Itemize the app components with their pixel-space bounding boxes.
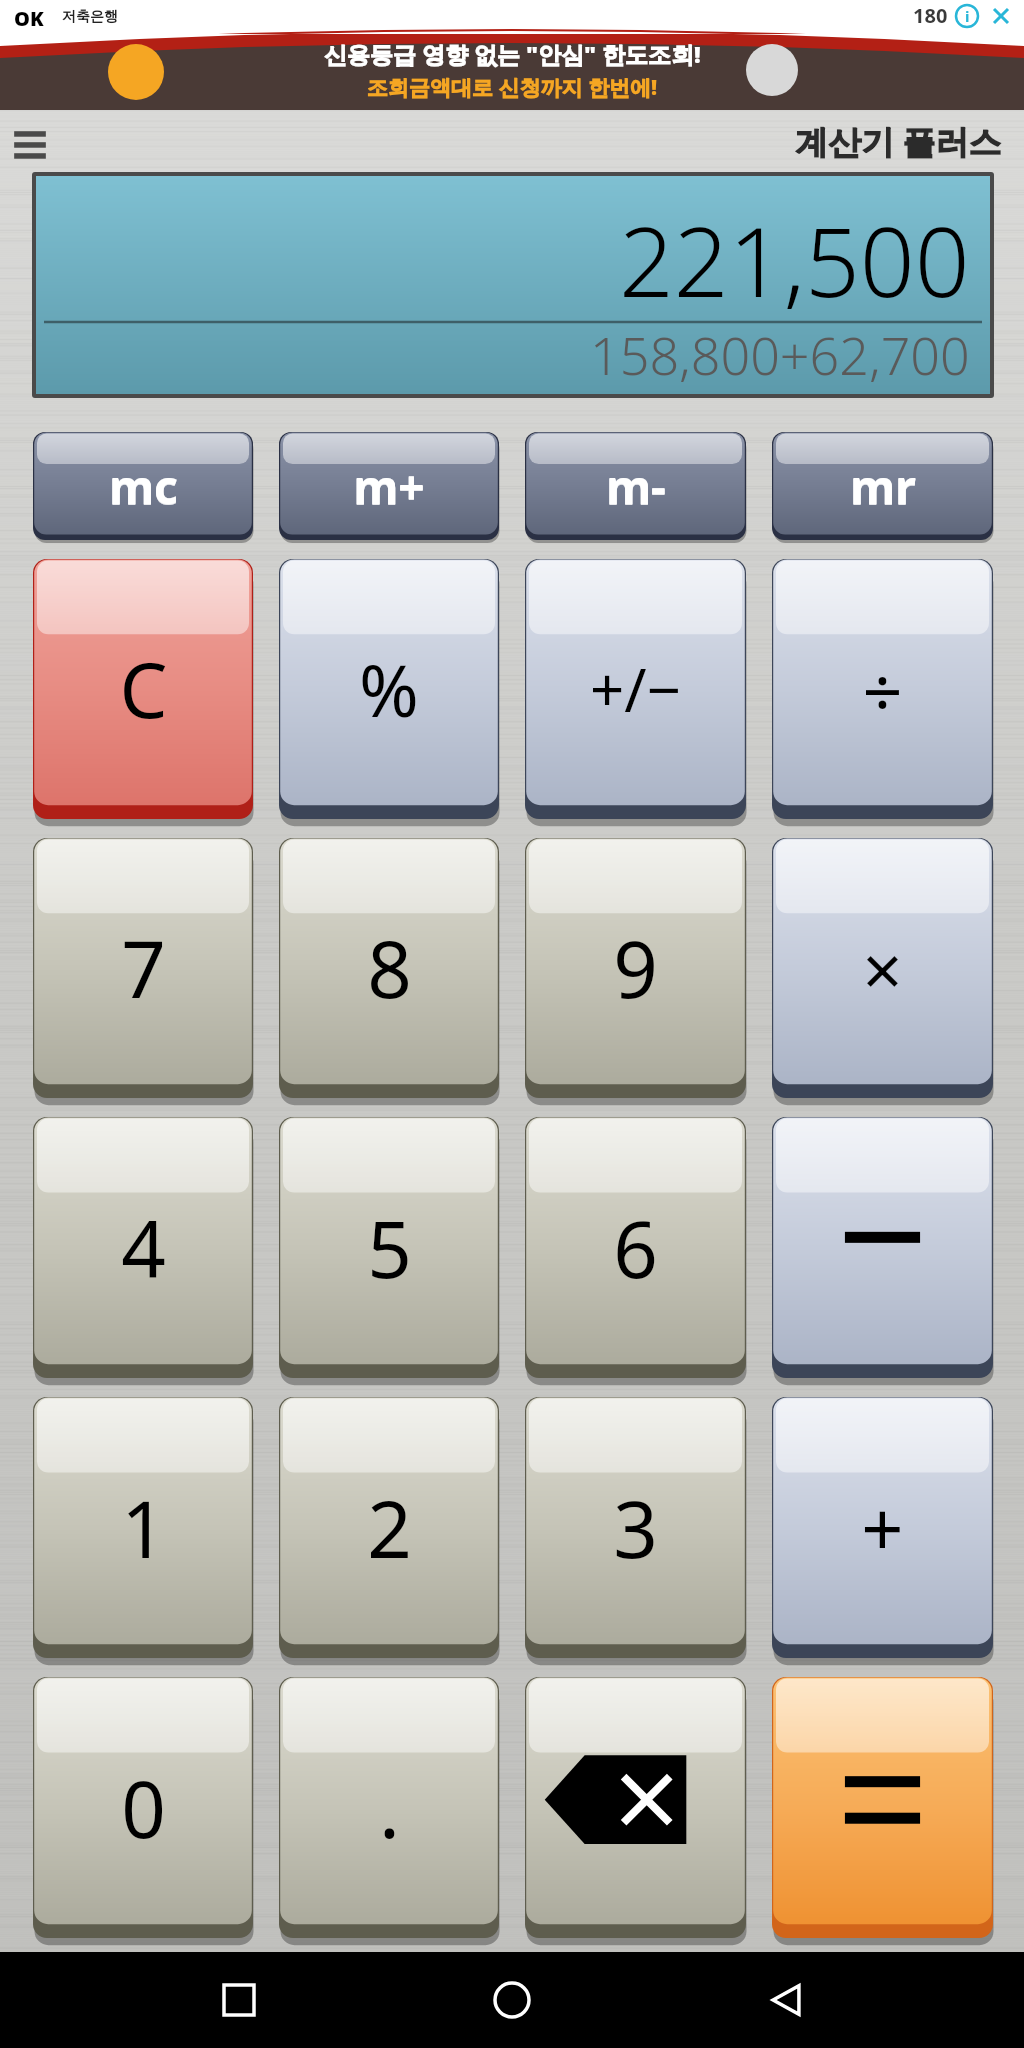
staticText: m+ xyxy=(353,456,425,519)
staticText: 7 xyxy=(121,915,166,1021)
staticText: 221,500 xyxy=(619,194,970,325)
button[interactable]: 1 xyxy=(33,1397,253,1658)
button[interactable]: Back xyxy=(751,1965,821,2035)
staticText: mr xyxy=(850,456,916,519)
staticText: 5 xyxy=(367,1195,412,1301)
button[interactable]: 4 xyxy=(33,1117,253,1378)
button[interactable]: . xyxy=(279,1677,499,1938)
button[interactable]: 7 xyxy=(33,838,253,1098)
staticText: m- xyxy=(606,456,666,519)
button[interactable]: 2 xyxy=(279,1397,499,1658)
staticText: 158,800+62,700 xyxy=(590,319,970,390)
button[interactable]: Menu xyxy=(8,119,52,163)
staticText: 180 xyxy=(913,2,948,29)
staticText: mc xyxy=(109,456,178,519)
staticText: 6 xyxy=(613,1195,658,1301)
staticText: + xyxy=(861,1477,904,1578)
button[interactable]: +/− xyxy=(525,559,746,819)
staticText: 신용등급 영향 없는 "안심" 한도조회! xyxy=(324,38,701,69)
staticText: C xyxy=(119,637,168,741)
button[interactable]: % xyxy=(279,559,499,819)
button[interactable]: 5 xyxy=(279,1117,499,1378)
button[interactable]: C xyxy=(33,559,253,819)
staticText: 8 xyxy=(367,915,412,1021)
staticText: 2 xyxy=(367,1475,412,1581)
button[interactable]: Home xyxy=(477,1965,547,2035)
button[interactable]: Info xyxy=(954,3,980,29)
button[interactable]: Close xyxy=(988,3,1014,29)
staticText: m- xyxy=(606,455,666,518)
button[interactable]: 9 xyxy=(525,838,746,1098)
staticText: m+ xyxy=(353,455,425,518)
staticText: ÷ xyxy=(862,642,903,737)
button[interactable]: m+ xyxy=(279,432,499,540)
staticText: mr xyxy=(850,455,916,518)
button[interactable]: + xyxy=(772,1397,993,1658)
staticText: 계산기 플러스 xyxy=(795,119,1002,164)
button[interactable]: 3 xyxy=(525,1397,746,1658)
staticText: i xyxy=(965,6,970,26)
staticText: × xyxy=(862,921,903,1016)
button[interactable]: m- xyxy=(525,432,746,540)
staticText: +/− xyxy=(590,648,681,730)
staticText: 1 xyxy=(121,1475,166,1581)
button[interactable]: Equals xyxy=(772,1677,993,1938)
button[interactable]: mc xyxy=(33,432,253,540)
staticText: . xyxy=(379,1755,400,1861)
staticText: OK xyxy=(14,5,44,32)
button[interactable]: ÷ xyxy=(772,559,993,819)
button[interactable]: 0 xyxy=(33,1677,253,1938)
staticText: 9 xyxy=(613,915,658,1021)
button[interactable]: 8 xyxy=(279,838,499,1098)
staticText: 3 xyxy=(613,1475,658,1581)
button[interactable]: × xyxy=(772,838,993,1098)
staticText: mc xyxy=(109,455,178,518)
button[interactable]: Minus xyxy=(772,1117,993,1378)
staticText: % xyxy=(359,640,419,738)
button[interactable]: Recents xyxy=(204,1965,274,2035)
button[interactable]: 6 xyxy=(525,1117,746,1378)
staticText: 조회금액대로 신청까지 한번에! xyxy=(367,73,658,102)
staticText: 4 xyxy=(121,1195,166,1301)
button[interactable]: Backspace xyxy=(525,1677,746,1938)
staticText: 0 xyxy=(121,1755,166,1861)
button[interactable]: mr xyxy=(772,432,993,540)
staticText: 저축은행 xyxy=(62,8,118,26)
